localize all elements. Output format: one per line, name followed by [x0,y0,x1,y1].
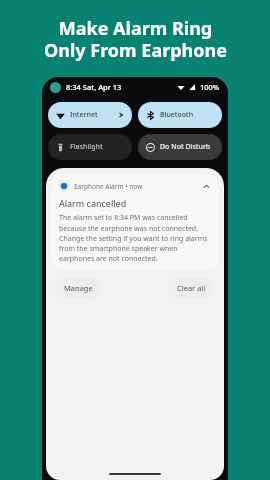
staticText: The alarm set to 8:34 PM was cancelled b… [59,213,211,263]
button[interactable]: Clear all [167,278,216,298]
button[interactable]: Profile [50,82,61,93]
button[interactable]: Collapse [201,181,211,191]
button[interactable]: Do Not Disturb [138,134,222,160]
staticText: 8:34 Sat, Apr 13 [66,82,122,92]
button[interactable]: Flashlight [48,134,132,160]
button[interactable]: Internet [48,102,132,128]
staticText: Internet [70,110,98,120]
button[interactable]: Bluetooth [138,102,222,128]
staticText: Clear all [177,283,206,293]
staticText: Flashlight [70,142,103,152]
staticText: 100% [200,82,220,92]
staticText: Earphone Alarm • now [74,182,143,191]
staticText: Do Not Disturb [160,142,211,152]
staticText: Alarm cancelled [59,197,127,209]
button[interactable]: Manage [54,278,103,298]
staticText: Manage [64,283,93,293]
staticText: Make Alarm Ring Only From Earphone [44,16,227,63]
button[interactable]: Earphone Alarm • now [51,174,219,270]
staticText: Bluetooth [160,110,194,120]
